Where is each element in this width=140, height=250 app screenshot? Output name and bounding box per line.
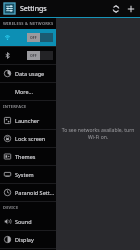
staticText: WIRELESS & NETWORKS	[3, 21, 54, 26]
staticText: Launcher	[15, 117, 40, 124]
button[interactable]: Paranoid Sett...	[0, 184, 56, 201]
staticText: DEVICE	[3, 205, 19, 210]
staticText: Paranoid Sett...	[15, 189, 55, 196]
button[interactable]: More...	[0, 83, 56, 100]
button[interactable]: Bluetooth	[0, 47, 56, 64]
staticText: OFF	[30, 53, 37, 58]
staticText: More...	[15, 88, 34, 95]
button[interactable]: Launcher	[0, 112, 56, 129]
staticText: Data usage	[15, 70, 45, 77]
button[interactable]: Display	[0, 231, 56, 248]
button[interactable]: Data usage	[0, 65, 56, 82]
button[interactable]: Wi-Fi	[0, 29, 56, 46]
button[interactable]: Add	[123, 1, 138, 16]
staticText: Themes	[15, 153, 36, 160]
staticText: Settings	[20, 4, 47, 14]
staticText: Display	[15, 236, 34, 243]
staticText: Sound	[15, 218, 32, 225]
button[interactable]: Themes	[0, 148, 56, 165]
button[interactable]: Lock screen	[0, 130, 56, 147]
staticText: INTERFACE	[3, 104, 27, 109]
staticText: OFF	[30, 35, 37, 40]
button[interactable]: Settings home	[3, 2, 16, 15]
button[interactable]: System	[0, 166, 56, 183]
button[interactable]: Search	[108, 1, 123, 16]
button[interactable]: Sound	[0, 213, 56, 230]
staticText: System	[15, 171, 34, 178]
staticText: To see networks available, turn Wi-Fi on…	[58, 127, 138, 141]
staticText: Lock screen	[15, 135, 46, 142]
